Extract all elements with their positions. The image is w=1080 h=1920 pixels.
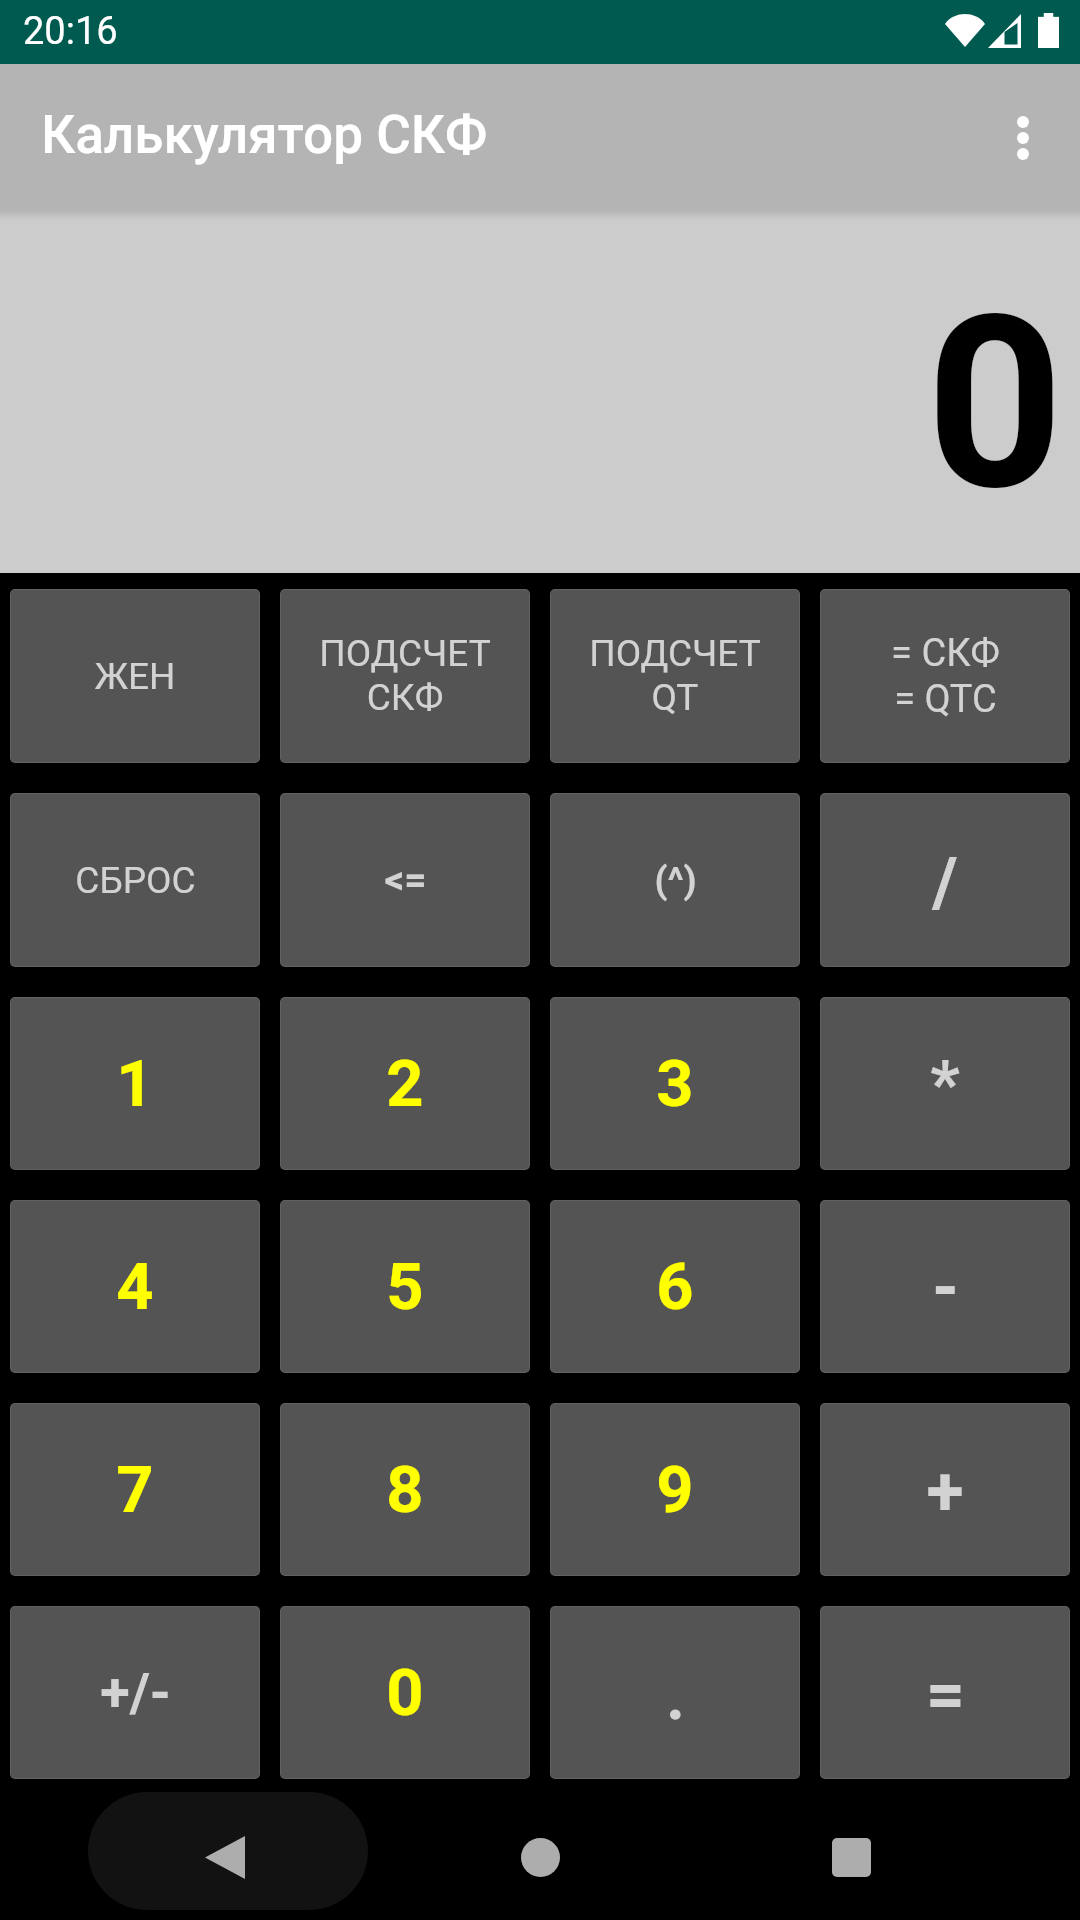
button[interactable]: Home [450,1779,630,1920]
button[interactable]: 5 [281,1201,529,1372]
staticText: = СКФ = QTC [891,631,1000,721]
button[interactable]: * [821,998,1069,1169]
staticText: * [930,1046,960,1122]
button[interactable]: 4 [11,1201,259,1372]
staticText: Калькулятор СКФ [41,104,488,166]
button[interactable]: More options [968,83,1078,193]
button[interactable]: 8 [281,1404,529,1575]
button[interactable]: 0 [281,1607,529,1778]
button[interactable]: - [821,1201,1069,1372]
staticText: 4 [116,1249,154,1325]
staticText: (^) [654,859,697,902]
button[interactable]: Back [88,1792,368,1910]
staticText: 6 [656,1249,694,1325]
button[interactable]: . [551,1607,799,1778]
staticText: 3 [656,1046,694,1122]
button[interactable]: СБРОС [11,794,259,966]
button[interactable]: <= [281,794,529,966]
staticText: + [926,1452,964,1532]
button[interactable]: Recents [630,1779,1080,1920]
staticText: 0 [386,1655,424,1731]
button[interactable]: 7 [11,1404,259,1575]
button[interactable]: +/- [11,1607,259,1778]
button[interactable]: ПОДСЧЕТ QT [551,590,799,762]
button[interactable]: 3 [551,998,799,1169]
staticText: - [932,1248,959,1328]
button[interactable]: = СКФ = QTC [821,590,1069,762]
staticText: 5 [386,1249,424,1325]
button[interactable]: ПОДСЧЕТ СКФ [281,590,529,762]
button[interactable]: 6 [551,1201,799,1372]
staticText: / [932,843,958,923]
staticText: = [926,1655,965,1735]
staticText: 2 [386,1046,424,1122]
staticText: 1 [116,1046,154,1122]
staticText: ЖЕН [94,655,176,698]
button[interactable]: 2 [281,998,529,1169]
button[interactable]: + [821,1404,1069,1575]
button[interactable]: 9 [551,1404,799,1575]
button[interactable]: (^) [551,794,799,966]
staticText: +/- [100,1661,171,1724]
staticText: ПОДСЧЕТ СКФ [319,632,491,719]
staticText: 20:16 [23,9,118,54]
staticText: <= [384,857,427,903]
staticText: 7 [116,1452,154,1528]
staticText: 8 [386,1452,424,1528]
button[interactable]: ЖЕН [11,590,259,762]
staticText: 0 [926,263,1064,544]
button[interactable]: / [821,794,1069,966]
button[interactable]: = [821,1607,1069,1778]
staticText: СБРОС [75,859,196,902]
staticText: . [666,1660,685,1735]
staticText: ПОДСЧЕТ QT [589,632,761,719]
button[interactable]: 1 [11,998,259,1169]
staticText: 9 [656,1452,694,1528]
